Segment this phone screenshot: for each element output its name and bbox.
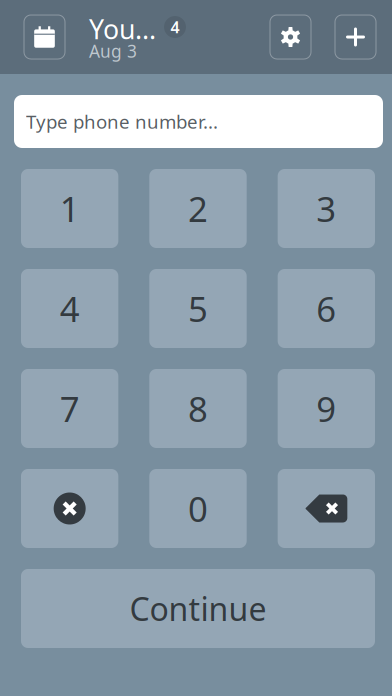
button[interactable]: 5 bbox=[149, 269, 247, 348]
staticText: Continue bbox=[129, 587, 266, 630]
staticText: 8 bbox=[188, 385, 208, 431]
staticText: 1 bbox=[60, 185, 80, 231]
button[interactable]: 1 bbox=[21, 169, 118, 248]
staticText: 9 bbox=[316, 385, 336, 431]
staticText: 3 bbox=[316, 185, 336, 231]
button[interactable]: Clear bbox=[21, 469, 118, 548]
button[interactable]: 7 bbox=[21, 369, 118, 448]
button[interactable]: Continue bbox=[21, 569, 375, 648]
button[interactable]: 9 bbox=[278, 369, 375, 448]
staticText: Type phone number... bbox=[26, 109, 218, 134]
button[interactable]: Backspace bbox=[278, 469, 375, 548]
button[interactable]: 4 bbox=[21, 269, 118, 348]
button[interactable]: 3 bbox=[278, 169, 375, 248]
staticText: Aug 3 bbox=[89, 39, 137, 62]
staticText: 5 bbox=[188, 285, 208, 331]
staticText: 4 bbox=[60, 285, 80, 331]
staticText: 0 bbox=[188, 485, 208, 531]
staticText: 7 bbox=[60, 385, 80, 431]
button[interactable]: 2 bbox=[149, 169, 247, 248]
button[interactable]: 6 bbox=[278, 269, 375, 348]
button[interactable]: 8 bbox=[149, 369, 247, 448]
staticText: 4 bbox=[170, 16, 179, 38]
staticText: 6 bbox=[316, 285, 336, 331]
button[interactable]: Settings bbox=[270, 15, 311, 59]
staticText: 2 bbox=[188, 185, 208, 231]
staticText: You... bbox=[89, 11, 156, 47]
button[interactable]: 0 bbox=[149, 469, 247, 548]
button[interactable]: Add bbox=[335, 15, 376, 59]
button[interactable]: Calendar bbox=[24, 15, 65, 59]
